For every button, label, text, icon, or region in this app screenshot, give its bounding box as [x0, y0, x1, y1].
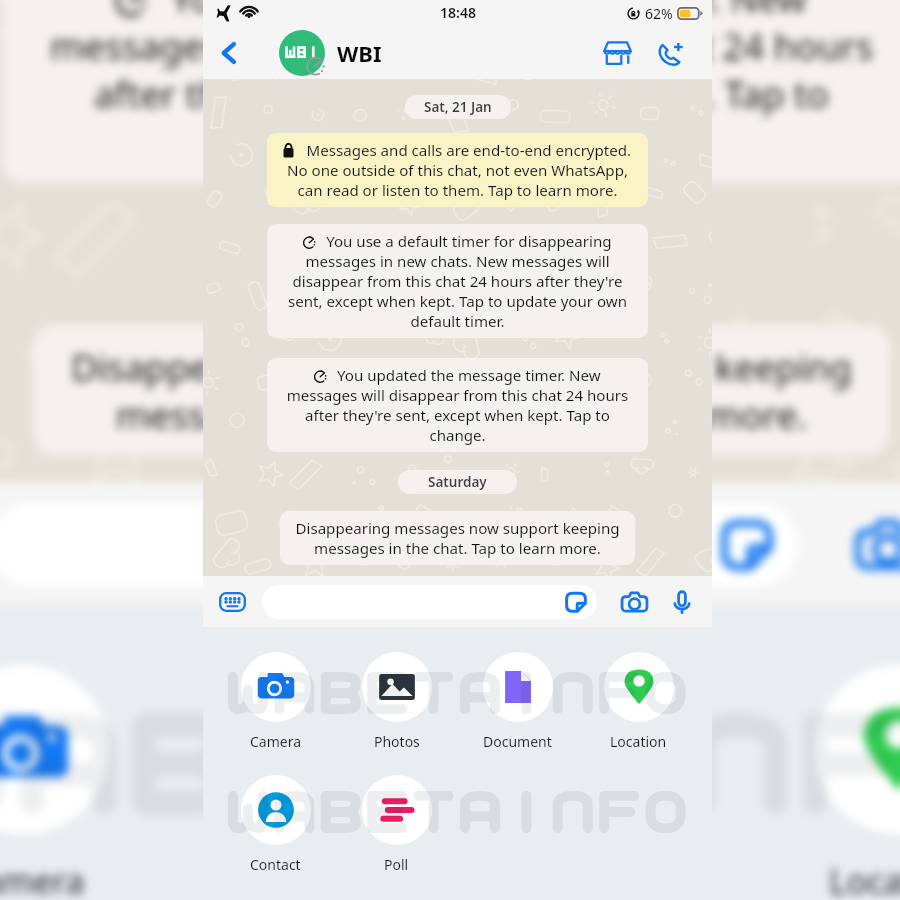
staticText: 62% [645, 4, 673, 23]
button[interactable]: Stickers [262, 585, 597, 619]
staticText: Photos [374, 732, 420, 751]
staticText: Document [483, 732, 552, 751]
button[interactable]: Messages and calls are end-to-end encryp… [267, 133, 648, 207]
button[interactable]: Poll [336, 775, 457, 874]
button[interactable]: Disappearing messages now support keepin… [280, 511, 635, 565]
button[interactable]: You updated the message timer. New messa… [2, 0, 900, 183]
button[interactable]: Location [752, 665, 900, 900]
button[interactable]: Photos [169, 665, 460, 900]
staticText: Saturday [428, 473, 487, 491]
button[interactable]: Saturday [318, 226, 605, 284]
staticText: Location [610, 732, 667, 751]
staticText: Poll [384, 855, 409, 874]
button[interactable]: Saturday [398, 470, 517, 494]
button[interactable]: Document [460, 665, 752, 900]
button[interactable]: You use a default timer for disappearing… [267, 224, 648, 338]
button[interactable]: Stickers [0, 504, 798, 586]
staticText: Camera [0, 858, 87, 900]
button[interactable]: Voice message [664, 584, 700, 620]
staticText: Camera [250, 732, 302, 751]
button[interactable]: Stickers [564, 589, 588, 615]
staticText: Sat, 21 Jan [424, 98, 492, 116]
button[interactable]: Camera [0, 665, 169, 900]
button[interactable]: Camera [843, 501, 900, 588]
staticText: 18:48 [440, 3, 476, 22]
button[interactable]: Stickers [718, 513, 776, 576]
staticText: You updated the message timer. New messa… [29, 0, 894, 166]
staticText: Location [829, 858, 900, 900]
staticText: Contact [250, 855, 301, 874]
button[interactable]: Camera [215, 652, 336, 751]
button[interactable]: You updated the message timer. New messa… [267, 358, 648, 452]
button[interactable]: Camera [616, 584, 652, 620]
staticText: Disappearing messages now support keepin… [291, 518, 624, 558]
staticText: You updated the message timer. New messa… [278, 365, 637, 445]
staticText: Disappearing messages now support keepin… [60, 342, 863, 439]
button[interactable]: Photos [336, 652, 457, 751]
button[interactable]: Back [209, 33, 249, 73]
button[interactable]: Contact [215, 775, 336, 874]
button[interactable]: Keyboard [214, 584, 250, 620]
staticText: Saturday [390, 234, 533, 277]
button[interactable]: Location [578, 652, 699, 751]
staticText: WBI [337, 38, 382, 68]
button[interactable]: Business catalog [595, 31, 639, 75]
button[interactable]: Document [457, 652, 578, 751]
staticText: Photos [260, 858, 371, 900]
button[interactable]: Voice call [648, 31, 692, 75]
button[interactable]: Disappearing messages now support keepin… [34, 325, 889, 455]
staticText: Messages and calls are end-to-end encryp… [278, 140, 637, 200]
staticText: You use a default timer for disappearing… [278, 231, 637, 331]
button[interactable]: Sat, 21 Jan [405, 95, 511, 119]
